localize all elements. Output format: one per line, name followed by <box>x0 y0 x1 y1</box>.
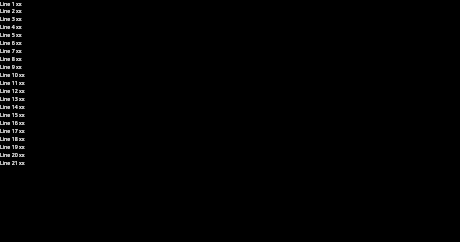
staticText: Line 1 xx Line 2 xx Line 3 xx Line 4 xx … <box>0 0 25 167</box>
